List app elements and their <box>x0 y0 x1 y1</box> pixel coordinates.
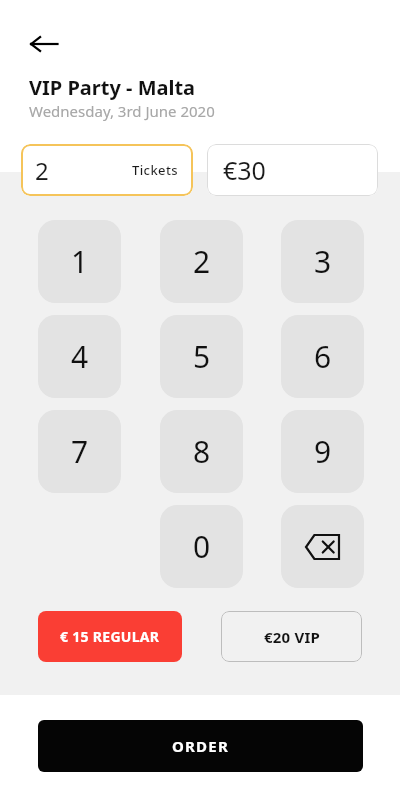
button[interactable]: Backspace <box>281 505 364 588</box>
button[interactable]: 7 <box>38 410 121 493</box>
button[interactable]: 5 <box>160 315 243 398</box>
staticText: 2 <box>193 241 211 282</box>
button[interactable]: Back <box>20 20 68 68</box>
button[interactable]: 4 <box>38 315 121 398</box>
button[interactable]: 8 <box>160 410 243 493</box>
button[interactable]: 2 <box>21 144 193 196</box>
staticText: €30 <box>223 153 266 187</box>
staticText: 7 <box>71 431 89 472</box>
staticText: €20 VIP <box>264 627 320 647</box>
staticText: 0 <box>193 526 211 567</box>
button[interactable]: 0 <box>160 505 243 588</box>
staticText: 1 <box>71 241 89 282</box>
staticText: 6 <box>314 336 332 377</box>
staticText: 5 <box>193 336 211 377</box>
staticText: 3 <box>314 241 332 282</box>
button[interactable]: ORDER <box>38 720 363 772</box>
staticText: VIP Party - Malta <box>29 74 196 101</box>
staticText: € 15 REGULAR <box>60 627 160 646</box>
button[interactable]: €30 <box>207 144 378 196</box>
staticText: Wednesday, 3rd June 2020 <box>29 101 215 121</box>
staticText: 2 <box>35 154 49 187</box>
button[interactable]: 9 <box>281 410 364 493</box>
button[interactable]: € 15 REGULAR <box>38 611 182 662</box>
button[interactable]: 6 <box>281 315 364 398</box>
staticText: Tickets <box>132 161 179 179</box>
staticText: ORDER <box>172 736 229 756</box>
staticText: 9 <box>314 431 332 472</box>
staticText: 8 <box>193 431 211 472</box>
button[interactable]: 2 <box>160 220 243 303</box>
staticText: 4 <box>71 336 89 377</box>
button[interactable]: 3 <box>281 220 364 303</box>
button[interactable]: €20 VIP <box>221 611 362 662</box>
button[interactable]: 1 <box>38 220 121 303</box>
